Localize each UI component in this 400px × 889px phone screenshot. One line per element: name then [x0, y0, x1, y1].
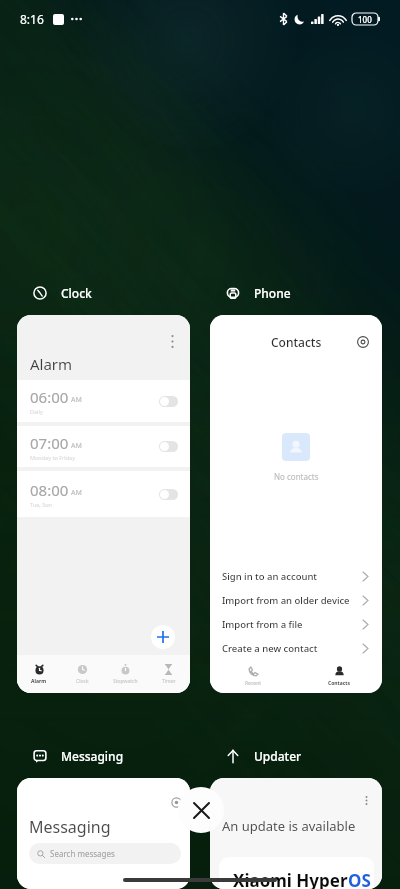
staticText: 100	[358, 14, 372, 25]
button[interactable]: Contacts	[296, 660, 382, 693]
button[interactable]: Contacts	[210, 315, 382, 693]
staticText: 06:00	[30, 387, 69, 407]
button[interactable]: Alarm toggle	[159, 441, 178, 452]
button[interactable]: Updater	[210, 743, 302, 768]
button[interactable]: 08:00	[17, 471, 190, 517]
staticText: Clock	[61, 285, 92, 301]
button[interactable]: Add alarm	[151, 625, 175, 649]
staticText: Recent	[245, 680, 262, 687]
staticText: 8:16	[20, 11, 44, 27]
staticText: Alarm	[30, 354, 73, 374]
staticText: Clock	[76, 678, 89, 685]
staticText: AM	[71, 395, 82, 405]
staticText: Updater	[254, 748, 302, 764]
staticText: Search messages	[50, 848, 115, 859]
staticText: An update is available	[222, 817, 356, 835]
button[interactable]: Clock	[17, 280, 92, 305]
staticText: Phone	[254, 285, 291, 301]
staticText: Timer	[162, 678, 176, 685]
button[interactable]: Phone	[210, 280, 291, 305]
button[interactable]: Import from an older device	[210, 588, 382, 612]
staticText: No contacts	[274, 471, 319, 482]
button[interactable]: Settings	[355, 334, 371, 350]
staticText: 07:00	[30, 433, 69, 453]
button[interactable]: Close all	[178, 787, 224, 833]
button[interactable]: Alarm	[17, 655, 61, 693]
button[interactable]: Timer	[147, 655, 190, 693]
staticText: OS	[348, 869, 371, 889]
button[interactable]: 06:00	[17, 380, 190, 422]
staticText: AM	[71, 488, 82, 498]
staticText: Import from a file	[222, 618, 303, 631]
staticText: 08:00	[30, 480, 69, 500]
staticText: Xiaomi Hyper	[233, 869, 348, 889]
button[interactable]: Create a new contact	[210, 636, 382, 660]
button[interactable]: Account	[17, 778, 190, 889]
button[interactable]: More options	[164, 333, 180, 349]
button[interactable]: Import from a file	[210, 612, 382, 636]
button[interactable]: Sign in to an account	[210, 564, 382, 588]
button[interactable]: Search messages	[29, 843, 181, 864]
button[interactable]: Clock	[61, 655, 104, 693]
button[interactable]: 07:00	[17, 426, 190, 467]
button[interactable]: More options	[210, 778, 382, 889]
staticText: Import from an older device	[222, 594, 350, 607]
button[interactable]: Alarm toggle	[159, 489, 178, 500]
button[interactable]: Stopwatch	[104, 655, 147, 693]
staticText: Messaging	[61, 748, 124, 764]
staticText: Messaging	[29, 816, 111, 838]
staticText: Contacts	[271, 334, 322, 350]
button[interactable]: More options	[17, 315, 190, 693]
button[interactable]: Account	[169, 795, 183, 809]
staticText: AM	[71, 441, 82, 451]
button[interactable]: Alarm toggle	[159, 396, 178, 407]
button[interactable]: Recent	[210, 660, 296, 693]
button[interactable]: More options	[359, 793, 373, 807]
staticText: Create a new contact	[222, 642, 318, 655]
staticText: Contacts	[328, 680, 351, 687]
staticText: Alarm	[31, 678, 47, 685]
staticText: Monday to Friday	[30, 454, 75, 461]
button[interactable]: Messaging	[17, 743, 124, 768]
staticText: Stopwatch	[113, 678, 138, 685]
staticText: Tue, Sun	[30, 501, 53, 508]
staticText: Daily	[30, 408, 43, 415]
staticText: Sign in to an account	[222, 570, 317, 583]
